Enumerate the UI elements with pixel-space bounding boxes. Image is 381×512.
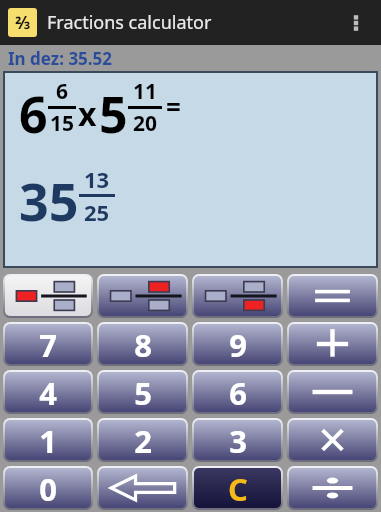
- staticText: 1: [39, 420, 57, 460]
- button[interactable]: 5: [97, 370, 188, 414]
- staticText: C: [228, 468, 248, 508]
- staticText: 25: [84, 197, 110, 227]
- button[interactable]: Plus: [287, 322, 378, 366]
- staticText: 20: [133, 109, 158, 138]
- button[interactable]: Select denominator: [192, 274, 283, 318]
- button[interactable]: Multiply: [287, 418, 378, 462]
- button[interactable]: Equals: [287, 274, 378, 318]
- staticText: 6: [19, 80, 48, 148]
- staticText: 5: [134, 372, 152, 412]
- staticText: 5: [99, 80, 128, 148]
- staticText: 8: [134, 324, 152, 364]
- staticText: 9: [229, 324, 247, 364]
- button[interactable]: 7: [3, 322, 93, 366]
- button[interactable]: Minus: [287, 370, 378, 414]
- staticText: 2: [134, 420, 152, 460]
- button[interactable]: 2: [97, 418, 188, 462]
- staticText: 35: [19, 165, 79, 236]
- staticText: 7: [39, 324, 57, 364]
- staticText: =: [166, 89, 181, 124]
- button[interactable]: 6: [192, 370, 283, 414]
- staticText: 0: [39, 468, 57, 508]
- button[interactable]: App icon: [8, 8, 37, 37]
- button[interactable]: 9: [192, 322, 283, 366]
- button[interactable]: C: [192, 466, 283, 510]
- staticText: 2⁄3: [15, 11, 31, 34]
- button[interactable]: Select whole number: [3, 274, 93, 318]
- staticText: x: [78, 92, 97, 136]
- staticText: Fractions calculator: [47, 10, 212, 35]
- button[interactable]: Divide: [287, 466, 378, 510]
- button[interactable]: 3: [192, 418, 283, 462]
- staticText: 15: [50, 109, 75, 138]
- button[interactable]: 4: [3, 370, 93, 414]
- staticText: 11: [133, 77, 158, 106]
- staticText: 3: [229, 420, 247, 460]
- staticText: 6: [56, 77, 69, 106]
- button[interactable]: Select numerator: [97, 274, 188, 318]
- button[interactable]: 8: [97, 322, 188, 366]
- button[interactable]: More options: [339, 6, 373, 40]
- staticText: 6: [229, 372, 247, 412]
- button[interactable]: 0: [3, 466, 93, 510]
- staticText: In dez: 35.52: [8, 47, 113, 70]
- button[interactable]: Backspace: [97, 466, 188, 510]
- staticText: 4: [39, 372, 57, 412]
- staticText: 13: [84, 164, 110, 194]
- button[interactable]: 1: [3, 418, 93, 462]
